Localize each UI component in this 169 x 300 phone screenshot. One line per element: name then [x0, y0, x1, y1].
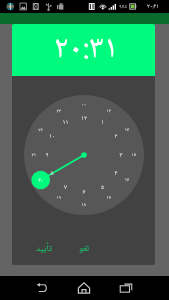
button[interactable]: Recent apps [112, 276, 140, 300]
button[interactable]: تأیید [31, 235, 57, 262]
button[interactable]: Back [28, 276, 56, 300]
button[interactable]: Home [70, 276, 98, 300]
staticText: تأیید [36, 241, 52, 256]
staticText: لغو [79, 241, 89, 256]
button[interactable]: ۲۰:۳۱ [12, 24, 155, 76]
staticText: ۲۰:۳۱ [54, 24, 119, 75]
staticText: ۹۸٪ [119, 2, 127, 12]
button[interactable]: لغو [74, 235, 94, 262]
staticText: ۲۰:۲۱ [147, 2, 160, 12]
